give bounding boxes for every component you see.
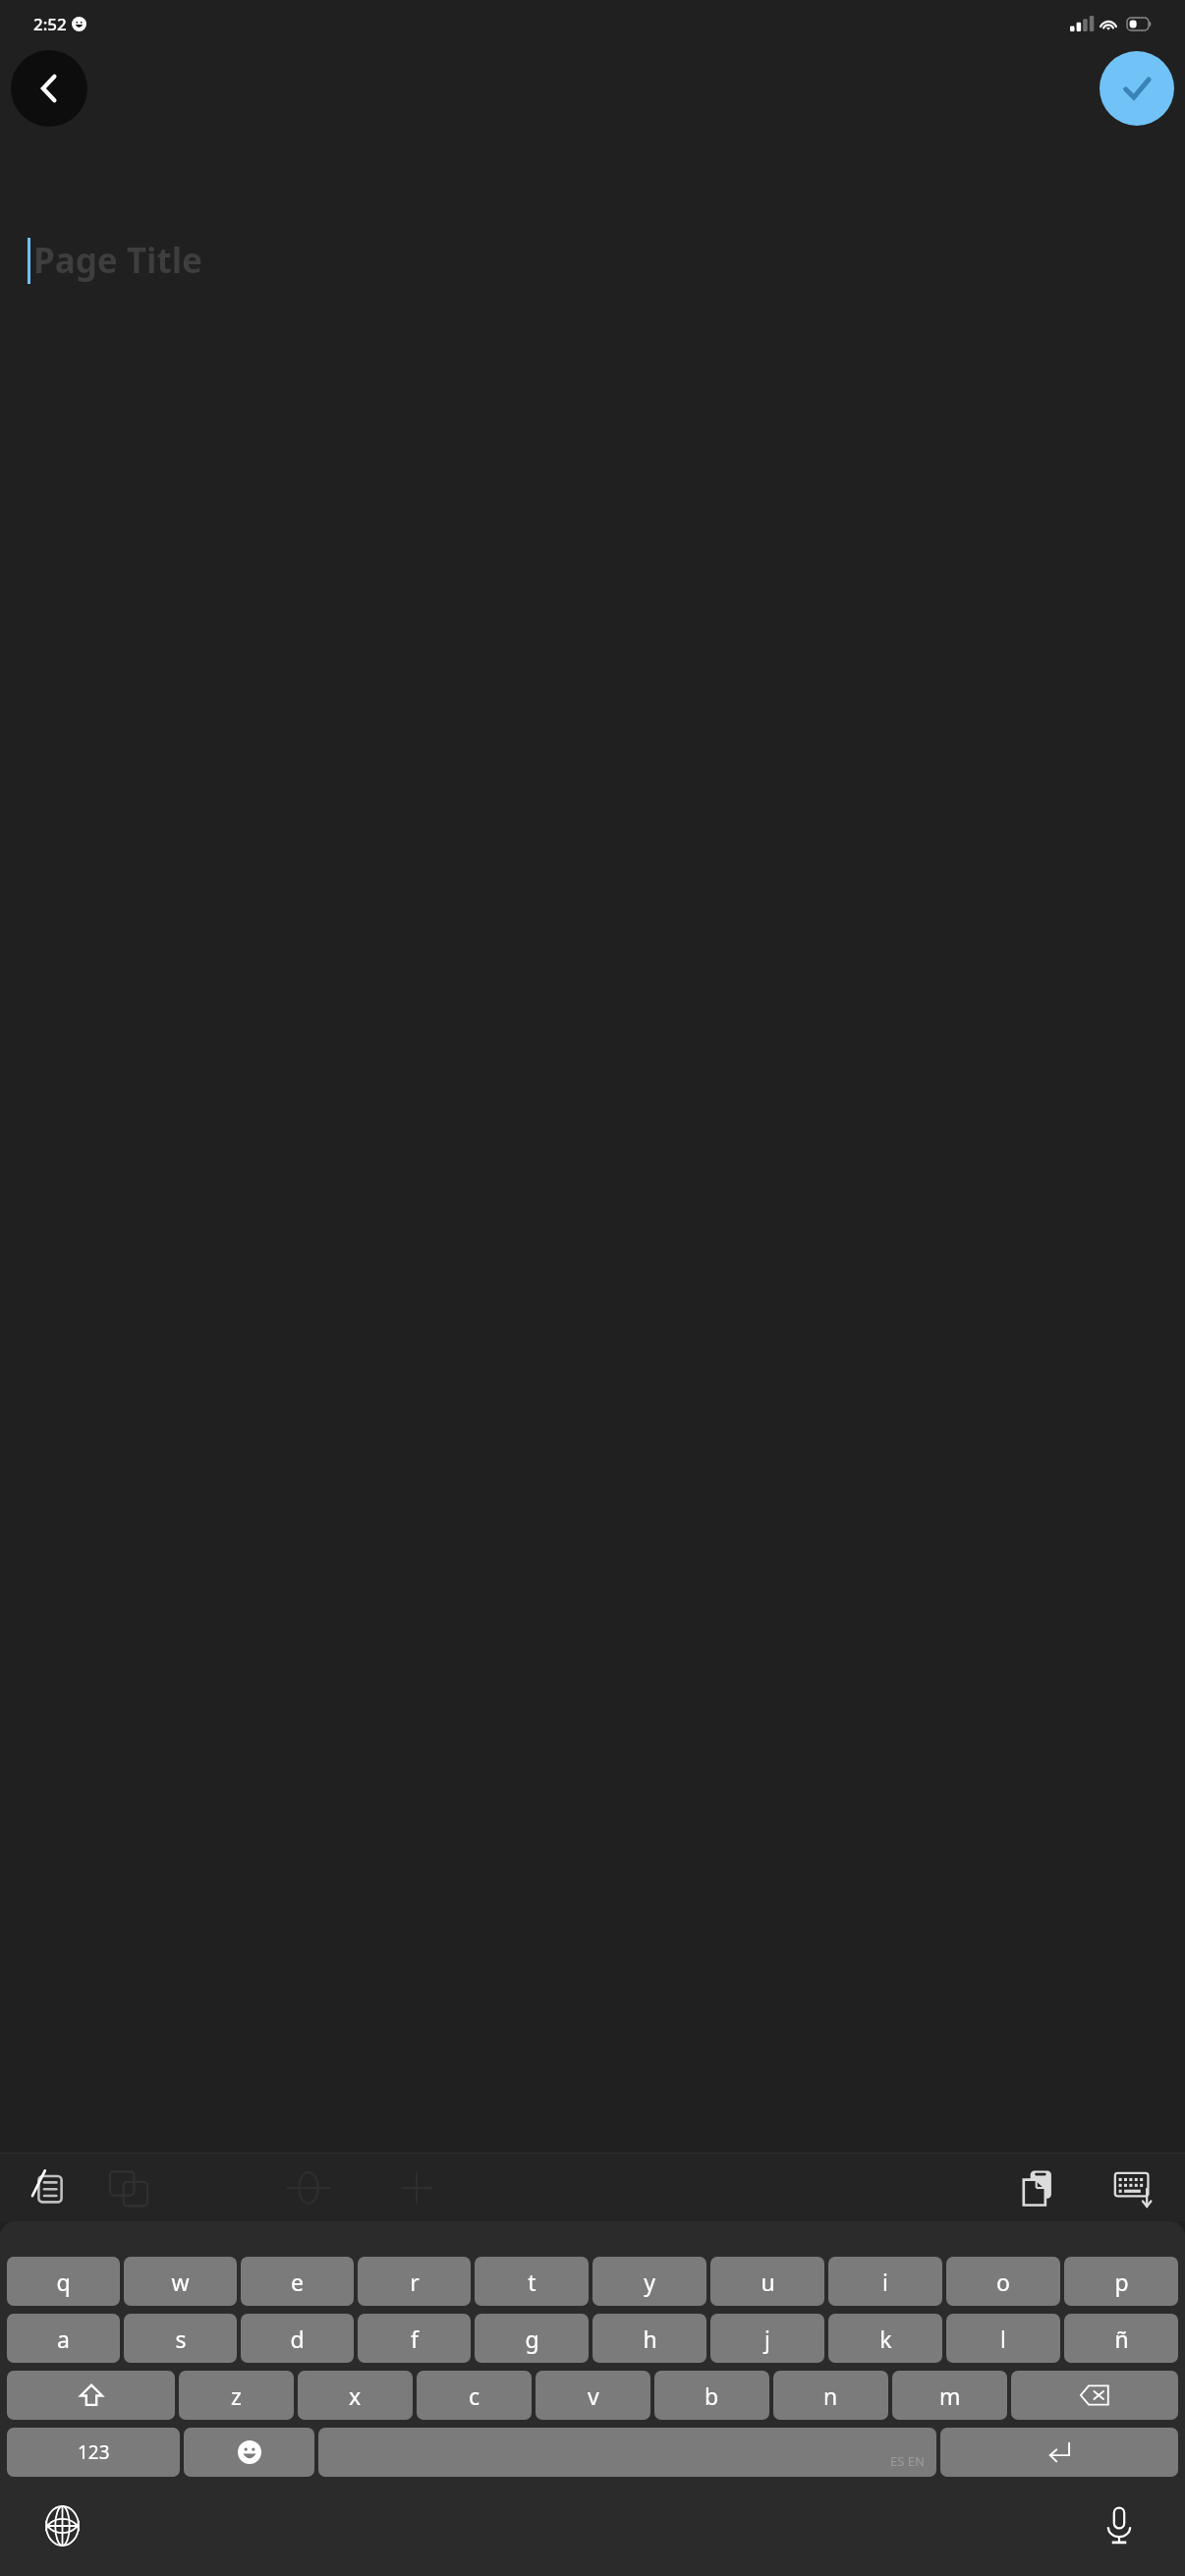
button[interactable]: z	[179, 2371, 294, 2420]
staticText: u	[761, 2267, 775, 2297]
button[interactable]: b	[654, 2371, 769, 2420]
button[interactable]: Back	[11, 50, 87, 127]
button[interactable]: Emoji	[184, 2428, 314, 2477]
button[interactable]: f	[358, 2314, 471, 2363]
button[interactable]: a	[7, 2314, 120, 2363]
button[interactable]: i	[828, 2257, 942, 2306]
button[interactable]: Voice input	[1091, 2497, 1148, 2554]
button[interactable]: j	[710, 2314, 824, 2363]
button[interactable]: t	[475, 2257, 589, 2306]
staticText: o	[996, 2267, 1010, 2297]
staticText: v	[588, 2380, 599, 2411]
staticText: k	[879, 2324, 892, 2354]
button[interactable]: c	[417, 2371, 532, 2420]
staticText: g	[525, 2324, 539, 2354]
button[interactable]: k	[828, 2314, 942, 2363]
staticText: i	[882, 2267, 888, 2297]
button[interactable]: Change language	[33, 2497, 90, 2554]
button[interactable]: s	[124, 2314, 237, 2363]
staticText: m	[939, 2380, 961, 2411]
button[interactable]: Backspace	[1011, 2371, 1178, 2420]
button[interactable]: m	[892, 2371, 1007, 2420]
button[interactable]: Clipboard	[1010, 2159, 1067, 2216]
staticText: a	[57, 2324, 70, 2354]
staticText: p	[1114, 2267, 1129, 2297]
button[interactable]: e	[241, 2257, 354, 2306]
button[interactable]: x	[298, 2371, 413, 2420]
button[interactable]: y	[592, 2257, 706, 2306]
staticText: e	[291, 2267, 304, 2297]
button[interactable]: Translate	[100, 2159, 157, 2216]
button[interactable]: l	[946, 2314, 1060, 2363]
staticText: x	[349, 2380, 362, 2411]
staticText: d	[290, 2324, 305, 2354]
button[interactable]: Space	[318, 2428, 936, 2477]
staticText: c	[469, 2380, 480, 2411]
button[interactable]: d	[241, 2314, 354, 2363]
button[interactable]: p	[1064, 2257, 1178, 2306]
button[interactable]: u	[710, 2257, 824, 2306]
button[interactable]: Page Title	[0, 130, 1185, 311]
button[interactable]: n	[773, 2371, 888, 2420]
button[interactable]: h	[592, 2314, 706, 2363]
staticText: t	[528, 2267, 536, 2297]
staticText: f	[411, 2324, 419, 2354]
staticText: n	[823, 2380, 838, 2411]
staticText: r	[410, 2267, 420, 2297]
button[interactable]: v	[536, 2371, 650, 2420]
staticText: w	[171, 2267, 190, 2297]
button[interactable]: Hide keyboard	[1106, 2159, 1163, 2216]
staticText: ñ	[1114, 2324, 1129, 2354]
staticText: z	[231, 2380, 242, 2411]
button[interactable]: r	[358, 2257, 471, 2306]
staticText: j	[764, 2324, 770, 2354]
button[interactable]: Enter	[940, 2428, 1178, 2477]
button[interactable]: w	[124, 2257, 237, 2306]
button[interactable]: 123	[7, 2428, 180, 2477]
staticText: s	[175, 2324, 187, 2354]
button[interactable]: Edit note	[20, 2159, 77, 2216]
button[interactable]: Shift	[7, 2371, 175, 2420]
staticText: 2:52	[33, 13, 67, 35]
staticText: q	[56, 2267, 71, 2297]
staticText: ES EN	[890, 2452, 925, 2470]
button[interactable]: Done	[1100, 51, 1174, 126]
staticText: 123	[78, 2439, 110, 2465]
button[interactable]: q	[7, 2257, 120, 2306]
staticText: y	[644, 2267, 655, 2297]
staticText: Page Title	[33, 237, 202, 284]
staticText: l	[1000, 2324, 1006, 2354]
staticText: b	[705, 2380, 719, 2411]
button[interactable]: ñ	[1064, 2314, 1178, 2363]
staticText: h	[643, 2324, 657, 2354]
button[interactable]: o	[946, 2257, 1060, 2306]
button[interactable]: g	[475, 2314, 589, 2363]
